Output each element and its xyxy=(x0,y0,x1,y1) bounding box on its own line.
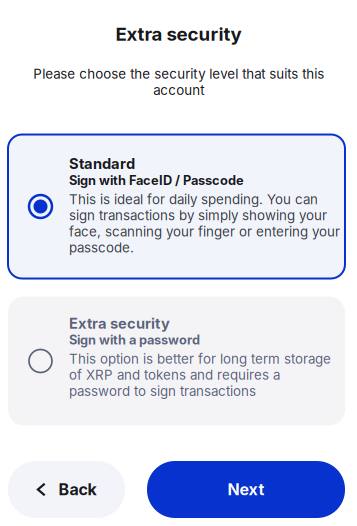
button[interactable]: Standard xyxy=(8,134,345,278)
button[interactable]: Extra security xyxy=(8,296,345,425)
staticText: Next xyxy=(227,480,264,499)
button[interactable]: Next xyxy=(147,461,345,518)
staticText: Extra security xyxy=(115,23,241,45)
staticText: Sign with a password xyxy=(69,332,200,348)
staticText: Back xyxy=(58,480,96,499)
staticText: Standard xyxy=(69,155,135,173)
staticText: Please choose the security level that su… xyxy=(33,66,324,98)
staticText: This option is better for long term stor… xyxy=(69,351,331,399)
staticText: This is ideal for daily spending. You ca… xyxy=(69,191,340,256)
staticText: Sign with FaceID / Passcode xyxy=(69,172,244,188)
staticText: Extra security xyxy=(69,314,170,332)
button[interactable]: Back xyxy=(8,461,125,518)
